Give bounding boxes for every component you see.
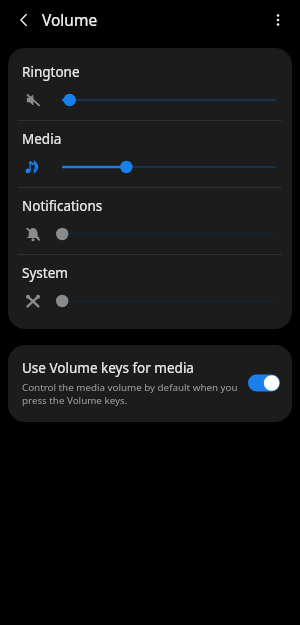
staticText: Media bbox=[22, 130, 62, 148]
button[interactable]: Use Volume keys for media bbox=[8, 345, 292, 422]
staticText: Control the media volume by default when… bbox=[22, 381, 238, 407]
button[interactable]: Ringtone bbox=[8, 54, 292, 120]
button[interactable]: Media bbox=[8, 121, 292, 187]
button[interactable]: More options bbox=[263, 5, 293, 35]
staticText: System bbox=[22, 264, 68, 282]
button[interactable]: System bbox=[8, 255, 292, 321]
button[interactable]: Notifications bbox=[8, 188, 292, 254]
button[interactable]: Use Volume keys for media toggle bbox=[248, 373, 280, 393]
staticText: Volume bbox=[42, 9, 98, 30]
staticText: Ringtone bbox=[22, 63, 80, 81]
staticText: Use Volume keys for media bbox=[22, 359, 194, 377]
staticText: Notifications bbox=[22, 197, 103, 215]
button[interactable]: Back bbox=[9, 5, 39, 35]
